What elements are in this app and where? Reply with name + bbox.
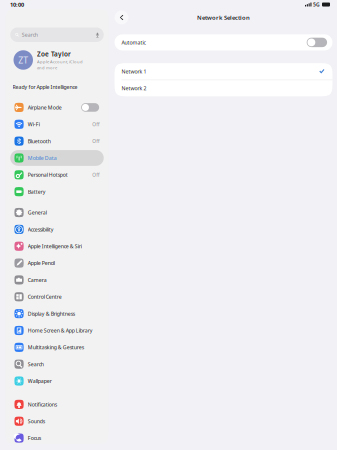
staticText: ZT [18,54,28,66]
staticText: Airplane Mode [28,104,62,111]
staticText: Off [92,172,99,178]
staticText: Mobile Data [28,154,57,161]
button[interactable]: Sounds [7,413,106,430]
button[interactable]: Mobile Data [7,149,106,166]
button[interactable]: Display & Brightness [7,305,106,322]
staticText: Focus [28,434,41,442]
staticText: Network 2 [121,85,146,92]
button[interactable]: Focus [7,430,106,447]
button[interactable]: Wi-Fi [7,116,106,133]
staticText: Notifications [28,401,57,408]
button[interactable]: ZT [7,49,106,71]
button[interactable]: General [7,204,106,221]
staticText: Personal Hotspot [28,171,68,178]
staticText: Bluetooth [28,138,51,145]
staticText: Multitasking & Gestures [28,344,84,351]
button[interactable]: Battery [7,183,106,200]
button[interactable]: Search [10,27,104,42]
staticText: 5G [313,1,320,8]
staticText: Camera [28,276,47,283]
button[interactable]: Notifications [7,396,106,413]
button[interactable]: Apple Intelligence & Siri [7,238,106,255]
staticText: and more [37,65,57,70]
staticText: Zoe Taylor [37,50,71,58]
staticText: Control Centre [28,293,62,300]
staticText: Off [92,138,99,144]
staticText: Network 1 [121,68,146,75]
button[interactable]: Back [114,10,128,24]
staticText: Home Screen & App Library [28,327,93,334]
button[interactable]: Wallpaper [7,373,106,389]
button[interactable]: Control Centre [7,288,106,305]
staticText: Apple Account, iCloud [37,59,83,64]
button[interactable]: Camera [7,271,106,288]
staticText: Automatic [121,39,145,46]
button[interactable]: Automatic [114,34,332,50]
button[interactable]: Accessibility [7,221,106,238]
staticText: Wi-Fi [28,121,40,128]
button[interactable]: Apple Pencil [7,255,106,271]
staticText: Network Selection [197,13,250,21]
button[interactable]: Home Screen & App Library [7,322,106,339]
button[interactable]: Personal Hotspot [7,166,106,183]
staticText: Battery [28,188,46,195]
staticText: 10:00 [10,1,24,8]
staticText: Sounds [28,418,45,425]
button[interactable]: Airplane Mode [7,99,106,116]
staticText: Off [92,121,99,127]
staticText: Accessibility [28,226,54,233]
staticText: Apple Pencil [28,259,55,267]
button[interactable]: Network 1 [114,63,332,80]
staticText: General [28,209,47,216]
staticText: Display & Brightness [28,310,75,317]
button[interactable]: Multitasking & Gestures [7,339,106,356]
staticText: Ready for Apple Intelligence [12,83,77,91]
button[interactable]: Network 2 [114,80,332,96]
button[interactable]: Search [7,356,106,373]
staticText: Wallpaper [28,377,52,385]
staticText: Search [22,31,38,38]
staticText: Apple Intelligence & Siri [28,243,82,250]
button[interactable]: Bluetooth [7,133,106,150]
staticText: Search [28,361,44,368]
